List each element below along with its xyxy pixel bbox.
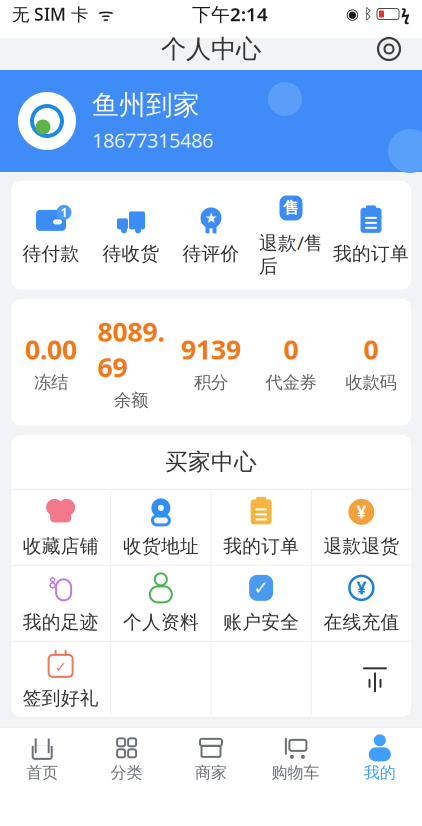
- staticText: 收藏店铺: [23, 535, 99, 558]
- button[interactable]: 收藏店铺: [11, 490, 110, 565]
- button[interactable]: 分类: [84, 736, 169, 782]
- staticText: 下午2:14: [192, 2, 268, 26]
- staticText: 收款码: [345, 372, 396, 393]
- staticText: 个人中心: [161, 33, 261, 64]
- staticText: 待收货: [102, 242, 159, 265]
- staticText: 在线充值: [323, 611, 399, 634]
- staticText: 18677315486: [92, 127, 213, 153]
- button[interactable]: 我的足迹: [11, 566, 110, 641]
- staticText: ϟ: [401, 3, 410, 25]
- button[interactable]: 首页: [0, 736, 84, 782]
- staticText: ★: [204, 210, 217, 226]
- button[interactable]: 0: [251, 331, 331, 393]
- staticText: 退款/售后: [259, 230, 323, 278]
- button[interactable]: 0: [331, 331, 411, 393]
- staticText: ᯤ: [88, 2, 114, 25]
- button[interactable]: 回到顶部: [361, 665, 389, 693]
- button[interactable]: 我的订单: [211, 490, 311, 565]
- staticText: 会员福利: [165, 741, 257, 769]
- button[interactable]: 0.00: [11, 331, 91, 393]
- staticText: 首页: [26, 763, 58, 782]
- staticText: 余额: [114, 389, 148, 411]
- staticText: 分类: [111, 763, 143, 782]
- button[interactable]: 商家: [169, 736, 253, 782]
- button[interactable]: ¥: [312, 490, 411, 565]
- staticText: 待评价: [182, 242, 239, 265]
- staticText: 我的: [364, 763, 396, 782]
- staticText: 待付款: [22, 242, 79, 265]
- staticText: 签到好礼: [23, 687, 99, 710]
- staticText: 我的订单: [223, 535, 299, 558]
- staticText: 0.00: [25, 331, 77, 367]
- staticText: 商家: [195, 763, 227, 782]
- staticText: 0: [283, 331, 298, 367]
- button[interactable]: 收货地址: [111, 490, 210, 565]
- staticText: 代金券: [265, 372, 316, 393]
- button[interactable]: 我的: [338, 736, 422, 782]
- staticText: 8089.69: [97, 314, 164, 384]
- button[interactable]: ¥: [312, 566, 411, 641]
- button[interactable]: 待收货: [91, 193, 171, 277]
- button[interactable]: 设置: [368, 28, 410, 70]
- staticText: 买家中心: [165, 448, 257, 476]
- button[interactable]: 9139: [171, 331, 251, 393]
- staticText: 0: [363, 331, 378, 367]
- button[interactable]: 1: [11, 193, 91, 277]
- button[interactable]: ✓: [11, 642, 110, 717]
- staticText: 退款退货: [323, 535, 399, 558]
- staticText: 鱼州到家: [92, 89, 200, 122]
- staticText: ¥: [356, 500, 366, 523]
- staticText: 积分: [194, 372, 228, 393]
- staticText: 无 SIM 卡: [12, 2, 88, 25]
- button[interactable]: 我的订单: [331, 193, 411, 277]
- staticText: ¥: [356, 576, 366, 599]
- button[interactable]: 售: [251, 181, 331, 290]
- button[interactable]: ✓: [211, 566, 311, 641]
- button[interactable]: ★: [171, 193, 251, 277]
- button[interactable]: 购物车: [253, 736, 338, 782]
- staticText: 1: [60, 204, 67, 220]
- staticText: ✓: [253, 577, 269, 598]
- staticText: 我的订单: [333, 242, 409, 265]
- staticText: 购物车: [271, 763, 319, 782]
- staticText: 9139: [181, 331, 241, 367]
- staticText: 冻结: [34, 372, 68, 393]
- staticText: 账户安全: [223, 611, 299, 634]
- button[interactable]: 8089.69: [91, 314, 171, 411]
- staticText: ◉ ᛒ: [346, 6, 373, 22]
- staticText: 个人资料: [123, 611, 199, 634]
- button[interactable]: 个人资料: [111, 566, 210, 641]
- staticText: ✓: [55, 658, 67, 675]
- staticText: 我的足迹: [23, 611, 99, 634]
- staticText: 售: [283, 198, 299, 218]
- staticText: 收货地址: [123, 535, 199, 558]
